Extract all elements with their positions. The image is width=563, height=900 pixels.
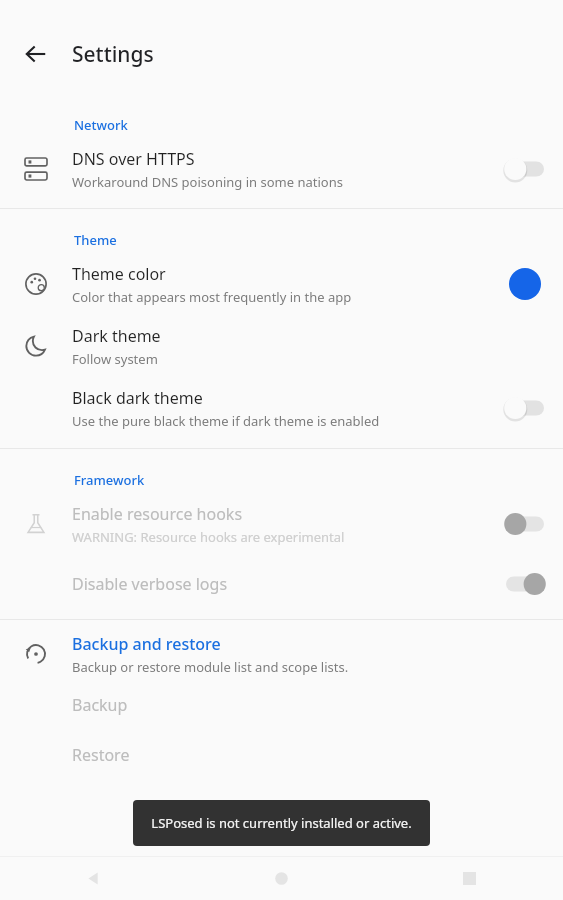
- staticText: LSPosed is not currently installed or ac…: [151, 814, 412, 832]
- staticText: Backup or restore module list and scope …: [72, 658, 349, 676]
- staticText: Framework: [74, 471, 145, 489]
- button[interactable]: Backup and restore: [0, 628, 563, 680]
- button[interactable]: Restore: [0, 730, 563, 780]
- staticText: Theme color: [72, 263, 166, 285]
- staticText: Color that appears most frequently in th…: [72, 288, 352, 306]
- staticText: Workaround DNS poisoning in some nations: [72, 173, 343, 191]
- staticText: Enable resource hooks: [72, 503, 243, 525]
- button[interactable]: Disable verbose logs: [0, 555, 563, 613]
- staticText: Dark theme: [72, 325, 161, 347]
- button[interactable]: Black dark theme: [0, 377, 563, 439]
- button[interactable]: Theme color: [0, 253, 563, 315]
- staticText: DNS over HTTPS: [72, 148, 195, 170]
- staticText: WARNING: Resource hooks are experimental: [72, 528, 345, 546]
- staticText: Backup and restore: [72, 633, 221, 655]
- staticText: Use the pure black theme if dark theme i…: [72, 412, 380, 430]
- staticText: Theme: [74, 231, 117, 249]
- button[interactable]: Theme color: [509, 268, 541, 300]
- button[interactable]: Enable resource hooks: [0, 493, 563, 555]
- staticText: Restore: [72, 744, 130, 766]
- staticText: Follow system: [72, 350, 158, 368]
- staticText: Settings: [72, 40, 154, 69]
- button[interactable]: DNS over HTTPS: [0, 138, 563, 200]
- button[interactable]: Back: [0, 26, 72, 82]
- staticText: Disable verbose logs: [72, 573, 228, 595]
- button[interactable]: Dark theme: [0, 315, 563, 377]
- staticText: Black dark theme: [72, 387, 203, 409]
- button[interactable]: Backup: [0, 680, 563, 730]
- staticText: Network: [74, 116, 128, 134]
- staticText: Backup: [72, 694, 128, 716]
- button[interactable]: Recent apps: [375, 856, 563, 900]
